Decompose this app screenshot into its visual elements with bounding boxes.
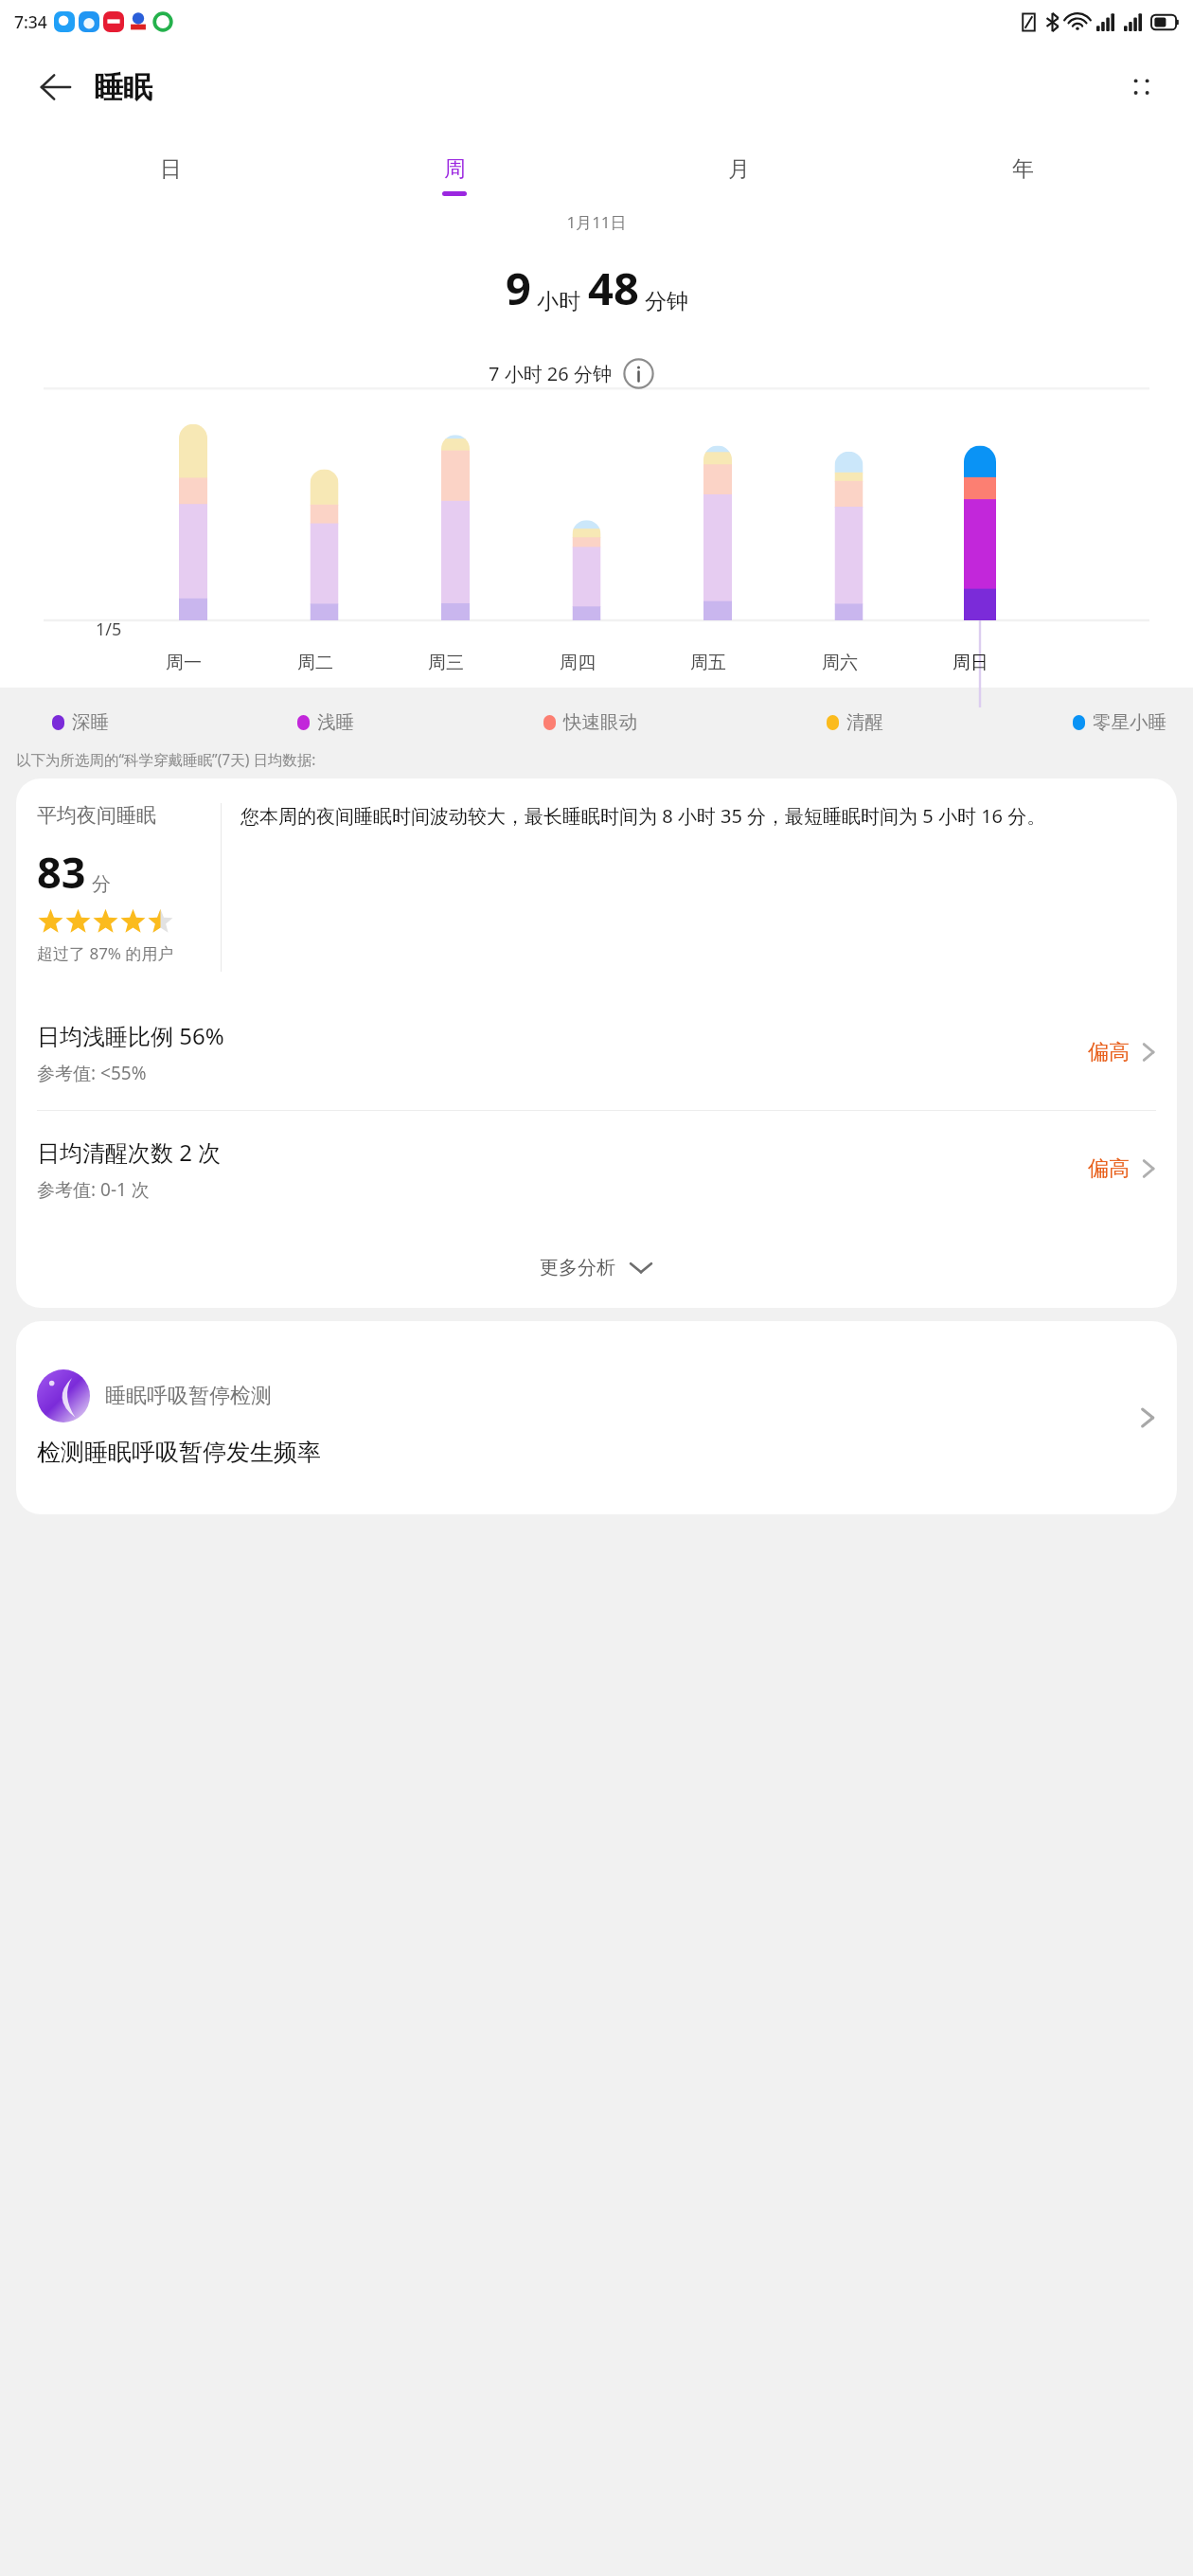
staticText: 1/5 [96, 617, 122, 641]
staticText: 日均清醒次数 2 次 [37, 1136, 222, 1168]
button[interactable]: 日 [140, 155, 201, 196]
staticText: 周三 [428, 652, 464, 674]
staticText: 周日 [953, 652, 988, 674]
button[interactable]: 睡眠呼吸暂停检测 [16, 1321, 1177, 1514]
staticText: 快速眼动 [563, 710, 637, 734]
staticText: 参考值: <55% [37, 1061, 147, 1085]
staticText: 清醒 [846, 710, 883, 734]
staticText: 48 [588, 258, 639, 318]
button[interactable]: 日均清醒次数 2 次 [16, 1111, 1177, 1226]
staticText: 日均浅睡比例 56% [37, 1020, 224, 1051]
staticText: 超过了 87% 的用户 [37, 942, 174, 964]
staticText: 浅睡 [317, 710, 354, 734]
staticText: 周二 [297, 652, 333, 674]
staticText: 分钟 [645, 288, 688, 315]
button[interactable]: 日均浅睡比例 56% [16, 994, 1177, 1110]
staticText: 睡眠 [94, 69, 152, 106]
staticText: 月 [728, 155, 750, 183]
staticText: 周五 [690, 652, 726, 674]
staticText: 零星小睡 [1093, 710, 1166, 734]
staticText: 83 [37, 843, 86, 901]
staticText: 小时 [537, 288, 580, 315]
staticText: 9 [506, 258, 531, 318]
staticText: 日 [160, 155, 182, 183]
button[interactable]: 清醒 [827, 710, 883, 734]
staticText: 平均夜间睡眠 [37, 803, 156, 828]
staticText: 睡眠呼吸暂停检测 [105, 1383, 272, 1409]
staticText: 偏高 [1088, 1039, 1130, 1065]
button[interactable]: 浅睡 [297, 710, 354, 734]
staticText: 参考值: 0-1 次 [37, 1177, 150, 1202]
button[interactable]: More options [1112, 58, 1170, 116]
staticText: 分 [92, 872, 111, 896]
staticText: 周 [444, 155, 466, 183]
staticText: 周六 [822, 652, 858, 674]
staticText: 周一 [166, 652, 202, 674]
button[interactable]: 月 [708, 155, 769, 196]
button[interactable]: Back [27, 58, 85, 116]
staticText: 您本周的夜间睡眠时间波动较大，最长睡眠时间为 8 小时 35 分，最短睡眠时间为… [240, 803, 1156, 829]
button[interactable]: 深睡 [52, 710, 109, 734]
staticText: 深睡 [72, 710, 109, 734]
button[interactable]: Info [621, 356, 655, 390]
staticText: 偏高 [1088, 1155, 1130, 1182]
staticText: 周四 [560, 652, 596, 674]
staticText: 7:34 [14, 10, 47, 33]
staticText: 检测睡眠呼吸暂停发生频率 [37, 1438, 321, 1467]
button[interactable]: 零星小睡 [1073, 710, 1166, 734]
staticText: 以下为所选周的“科学穿戴睡眠”(7天) 日均数据: [16, 749, 316, 769]
button[interactable]: 更多分析 [16, 1226, 1177, 1308]
staticText: 年 [1012, 155, 1034, 183]
staticText: 7 小时 26 分钟 [489, 361, 612, 386]
button[interactable]: 年 [992, 155, 1053, 196]
staticText: 更多分析 [540, 1256, 615, 1279]
button[interactable]: 快速眼动 [543, 710, 637, 734]
staticText: 1月11日 [0, 211, 1193, 233]
button[interactable]: 周 [424, 155, 485, 196]
